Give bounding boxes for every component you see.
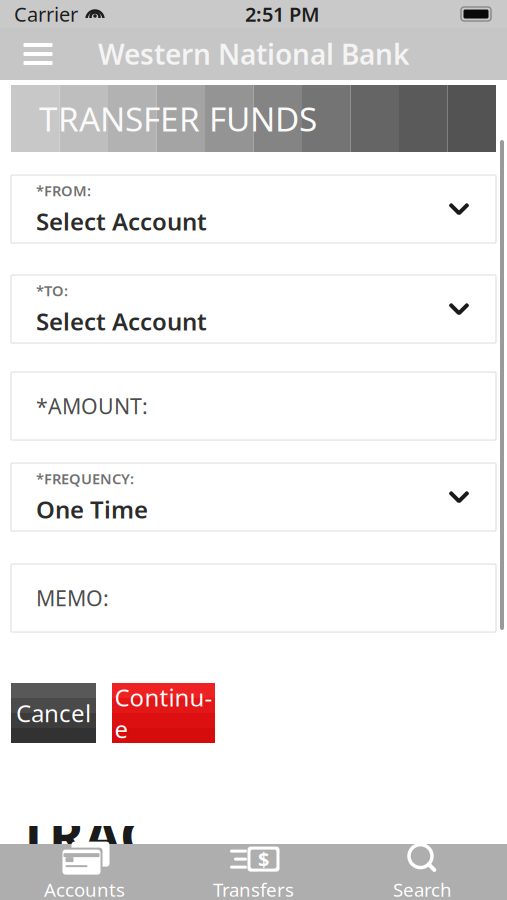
button[interactable]: Cancel: [11, 683, 96, 743]
staticText: *FROM:: [36, 181, 91, 200]
staticText: Western National Bank: [98, 35, 409, 73]
button[interactable]: *TO:: [11, 275, 496, 343]
button[interactable]: Menu: [10, 31, 66, 77]
staticText: Cancel: [16, 697, 91, 729]
staticText: TRANSFER FUNDS: [39, 96, 317, 141]
staticText: $: [258, 846, 269, 872]
staticText: TRAC: [18, 800, 154, 870]
staticText: One Time: [36, 493, 148, 525]
staticText: 2:51 PM: [245, 1, 320, 27]
button[interactable]: *FREQUENCY:: [11, 463, 496, 531]
staticText: Select Account: [36, 205, 207, 237]
staticText: Transfers: [213, 877, 294, 900]
button[interactable]: *FROM:: [11, 175, 496, 243]
staticText: *AMOUNT:: [36, 392, 148, 420]
staticText: Search: [393, 877, 452, 900]
staticText: MEMO:: [36, 584, 109, 612]
staticText: *TO:: [36, 281, 68, 300]
staticText: *FREQUENCY:: [36, 469, 134, 488]
button[interactable]: MEMO:: [11, 564, 496, 632]
staticText: Accounts: [44, 877, 125, 900]
button[interactable]: *AMOUNT:: [11, 372, 496, 440]
button[interactable]: Accounts: [0, 844, 169, 900]
button[interactable]: Search: [338, 844, 507, 900]
button[interactable]: Continue: [112, 683, 215, 743]
staticText: Continue: [114, 681, 212, 745]
staticText: Select Account: [36, 305, 207, 337]
button[interactable]: $: [169, 844, 338, 900]
staticText: Carrier: [14, 1, 78, 27]
